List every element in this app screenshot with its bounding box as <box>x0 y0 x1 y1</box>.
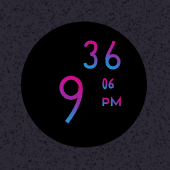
button[interactable]: Watch face <box>0 0 170 170</box>
